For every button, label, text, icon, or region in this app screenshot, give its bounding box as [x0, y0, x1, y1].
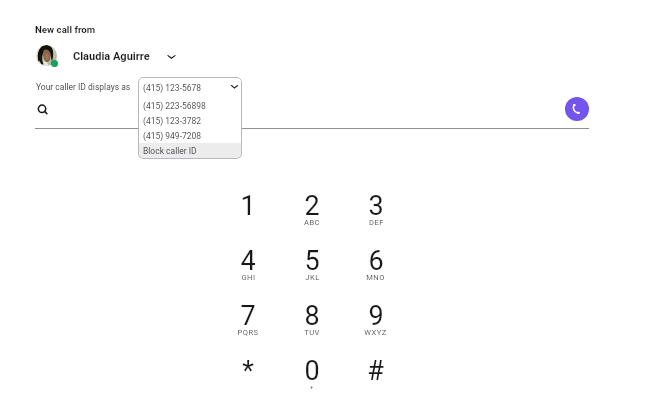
staticText: JKL	[305, 273, 320, 282]
staticText: TUV	[304, 328, 320, 337]
staticText: 3	[368, 190, 384, 222]
button[interactable]: (415) 123-5678	[138, 77, 242, 98]
staticText: Your caller ID displays as	[36, 82, 131, 92]
staticText: *	[242, 355, 254, 387]
staticText: 1	[240, 190, 256, 222]
button[interactable]: 2	[280, 190, 344, 245]
button[interactable]: 5	[280, 245, 344, 300]
staticText: 9	[368, 300, 384, 332]
staticText: (415) 123-5678	[143, 83, 202, 93]
button[interactable]: 3	[344, 190, 407, 245]
staticText: Block caller ID	[143, 146, 197, 156]
staticText: PQRS	[237, 328, 259, 337]
button[interactable]: (415) 949-7208	[138, 128, 242, 143]
staticText: New call from	[35, 24, 96, 35]
staticText: Claudia Aguirre	[73, 50, 150, 63]
button[interactable]: (415) 123-3782	[138, 113, 242, 128]
staticText: 8	[304, 300, 320, 332]
staticText: (415) 949-7208	[143, 131, 202, 141]
staticText: 7	[240, 300, 256, 332]
staticText: #	[367, 355, 384, 387]
button[interactable]: *	[215, 355, 280, 406]
staticText: 5	[304, 245, 320, 277]
staticText: MNO	[366, 273, 385, 282]
button[interactable]: 7	[215, 300, 280, 355]
button[interactable]: Call	[565, 97, 589, 121]
staticText: ABC	[304, 218, 320, 227]
staticText: WXYZ	[364, 328, 387, 337]
staticText: 0	[304, 355, 320, 387]
staticText: +	[310, 383, 314, 390]
button[interactable]: Block caller ID	[138, 143, 242, 158]
staticText: 4	[240, 245, 256, 277]
button[interactable]: Claudia Aguirre	[73, 48, 177, 64]
staticText: (415) 223-56898	[143, 101, 206, 111]
staticText: (415) 123-3782	[143, 116, 202, 126]
staticText: 6	[368, 245, 384, 277]
staticText: 2	[304, 190, 320, 222]
button[interactable]: (415) 223-56898	[138, 98, 242, 113]
button[interactable]: 9	[344, 300, 407, 355]
button[interactable]: 4	[215, 245, 280, 300]
button[interactable]: 8	[280, 300, 344, 355]
button[interactable]: 1	[215, 190, 280, 245]
staticText: DEF	[369, 218, 384, 227]
button[interactable]: Search	[35, 102, 51, 118]
button[interactable]: 6	[344, 245, 407, 300]
staticText: GHI	[241, 273, 256, 282]
button[interactable]: #	[344, 355, 407, 406]
button[interactable]: 0	[280, 355, 344, 406]
